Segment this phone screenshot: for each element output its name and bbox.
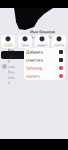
staticText: видео bbox=[37, 42, 47, 48]
button[interactable]: Добавить bbox=[24, 48, 65, 56]
staticText: Очистить bbox=[26, 57, 43, 63]
staticText: был(а) недавно bbox=[30, 34, 56, 40]
staticText: Заблокир. bbox=[26, 65, 43, 71]
button[interactable]: видео bbox=[35, 35, 49, 48]
button[interactable]: сооб bbox=[1, 35, 15, 48]
button[interactable]: Очистить bbox=[24, 56, 65, 64]
staticText: сообщение bbox=[8, 64, 15, 85]
button[interactable]: звон bbox=[18, 35, 32, 48]
staticText: почта bbox=[54, 42, 64, 48]
staticText: звон bbox=[21, 42, 29, 48]
button[interactable]: Заблокир. bbox=[24, 64, 65, 72]
staticText: Имя Фамилия bbox=[30, 29, 55, 34]
button[interactable]: почта bbox=[52, 35, 66, 48]
staticText: Контакт bbox=[8, 48, 15, 64]
staticText: Добавить bbox=[26, 49, 43, 55]
staticText: сооб bbox=[4, 42, 12, 48]
button[interactable]: Удалить bbox=[24, 72, 65, 80]
staticText: Удалить bbox=[26, 73, 40, 79]
